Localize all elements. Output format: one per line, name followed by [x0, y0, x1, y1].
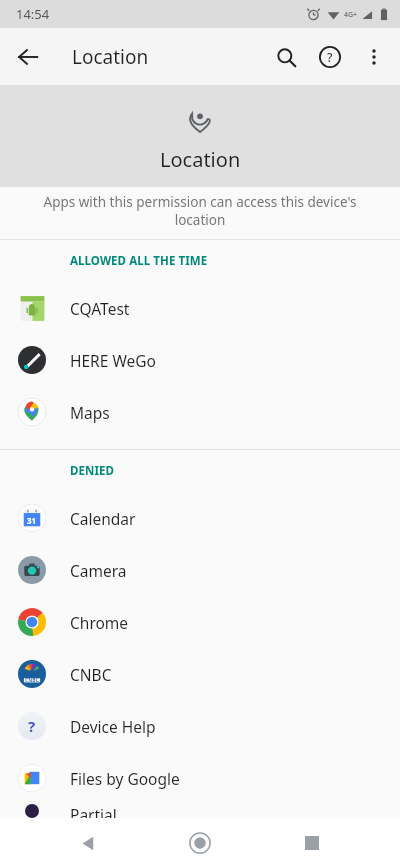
staticText: Files by Google — [70, 768, 180, 789]
staticText: CNBC — [70, 664, 112, 685]
button[interactable]: Files by Google — [0, 752, 400, 804]
staticText: Partial — [70, 804, 117, 818]
button[interactable]: More options — [352, 35, 396, 79]
button[interactable]: Camera — [0, 544, 400, 596]
button[interactable]: Chrome — [0, 596, 400, 648]
staticText: Apps with this permission can access thi… — [34, 193, 366, 229]
button[interactable]: ? — [0, 700, 400, 752]
staticText: Calendar — [70, 508, 136, 529]
button[interactable]: Back — [8, 37, 48, 77]
staticText: Device Help — [70, 716, 156, 737]
staticText: ? — [327, 49, 333, 65]
staticText: Location — [72, 44, 149, 70]
staticText: ? — [28, 716, 36, 736]
staticText: ALLOWED ALL THE TIME — [70, 253, 208, 269]
button[interactable]: Maps — [0, 386, 400, 438]
staticText: CQATest — [70, 298, 130, 319]
staticText: HERE WeGo — [70, 350, 156, 371]
staticText: 14:54 — [16, 5, 50, 23]
button[interactable]: Partial — [0, 804, 400, 818]
button[interactable]: Help — [308, 35, 352, 79]
staticText: DENIED — [70, 463, 115, 479]
staticText: Camera — [70, 560, 127, 581]
staticText: Maps — [70, 402, 110, 423]
staticText: Chrome — [70, 612, 129, 633]
button[interactable]: CNBC — [0, 648, 400, 700]
button[interactable]: Search — [264, 35, 308, 79]
staticText: 31 — [27, 515, 37, 526]
button[interactable]: Recent apps — [288, 819, 336, 867]
staticText: Location — [160, 146, 241, 173]
staticText: 4G+ — [344, 10, 358, 20]
button[interactable]: 31 — [0, 492, 400, 544]
staticText: CNBC — [25, 677, 39, 684]
button[interactable]: CQATest — [0, 282, 400, 334]
button[interactable]: Back — [64, 819, 112, 867]
button[interactable]: Home — [176, 819, 224, 867]
button[interactable]: HERE WeGo — [0, 334, 400, 386]
